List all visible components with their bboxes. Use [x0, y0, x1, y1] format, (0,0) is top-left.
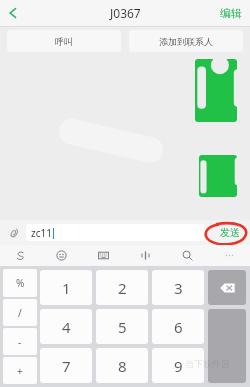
button[interactable]: Voice [124, 245, 166, 266]
staticText: - [18, 335, 22, 349]
button[interactable]: 编辑 [212, 2, 250, 24]
button[interactable]: 5 [96, 309, 148, 344]
button[interactable]: Attach [5, 224, 23, 242]
staticText: J0367 [110, 5, 141, 21]
button[interactable]: 1 [40, 270, 92, 305]
button[interactable]: 3 [152, 270, 204, 305]
button[interactable]: 呼叫 [7, 30, 121, 52]
staticText: 1 [62, 278, 71, 298]
staticText: 呼叫 [55, 36, 73, 47]
button[interactable]: 7 [40, 348, 92, 383]
button[interactable]: Keyboard [82, 245, 124, 266]
staticText: 3 [174, 278, 183, 298]
button[interactable]: 4 [40, 309, 92, 344]
button[interactable]: Sent message [195, 59, 237, 122]
staticText: 4 [62, 317, 71, 337]
staticText: 发送 [220, 226, 240, 239]
button[interactable]: - [3, 328, 37, 355]
staticText: % [16, 276, 25, 290]
button[interactable]: Back [0, 0, 26, 26]
button[interactable]: 发送 [210, 220, 250, 245]
button[interactable]: 2 [96, 270, 148, 305]
button[interactable]: / [3, 299, 37, 326]
button[interactable]: % [3, 269, 37, 297]
staticText: 9 [174, 356, 183, 376]
staticText: 编辑 [220, 6, 242, 20]
staticText: 添加到联系人 [159, 36, 213, 47]
button[interactable]: Backspace [208, 270, 246, 305]
button[interactable]: Search [166, 245, 208, 266]
staticText: 5 [118, 317, 127, 337]
button[interactable]: 9 [152, 348, 204, 383]
button[interactable]: More [208, 245, 250, 266]
staticText: / [18, 306, 22, 320]
button[interactable]: Emoji [41, 245, 82, 266]
staticText: 6 [174, 317, 183, 337]
button[interactable]: 添加到联系人 [129, 30, 243, 52]
button[interactable]: Sogou [0, 245, 41, 266]
button[interactable]: + [3, 357, 37, 384]
button[interactable]: 8 [96, 348, 148, 383]
button[interactable]: 6 [152, 309, 204, 344]
staticText: + [17, 364, 23, 378]
staticText: 2 [118, 278, 127, 298]
staticText: 当下软件园 [185, 358, 230, 369]
staticText: zc11 [31, 226, 52, 240]
button[interactable]: Sent message [199, 155, 237, 197]
staticText: 8 [118, 356, 127, 376]
button[interactable]: zc11 [26, 224, 204, 241]
staticText: 7 [62, 356, 71, 376]
